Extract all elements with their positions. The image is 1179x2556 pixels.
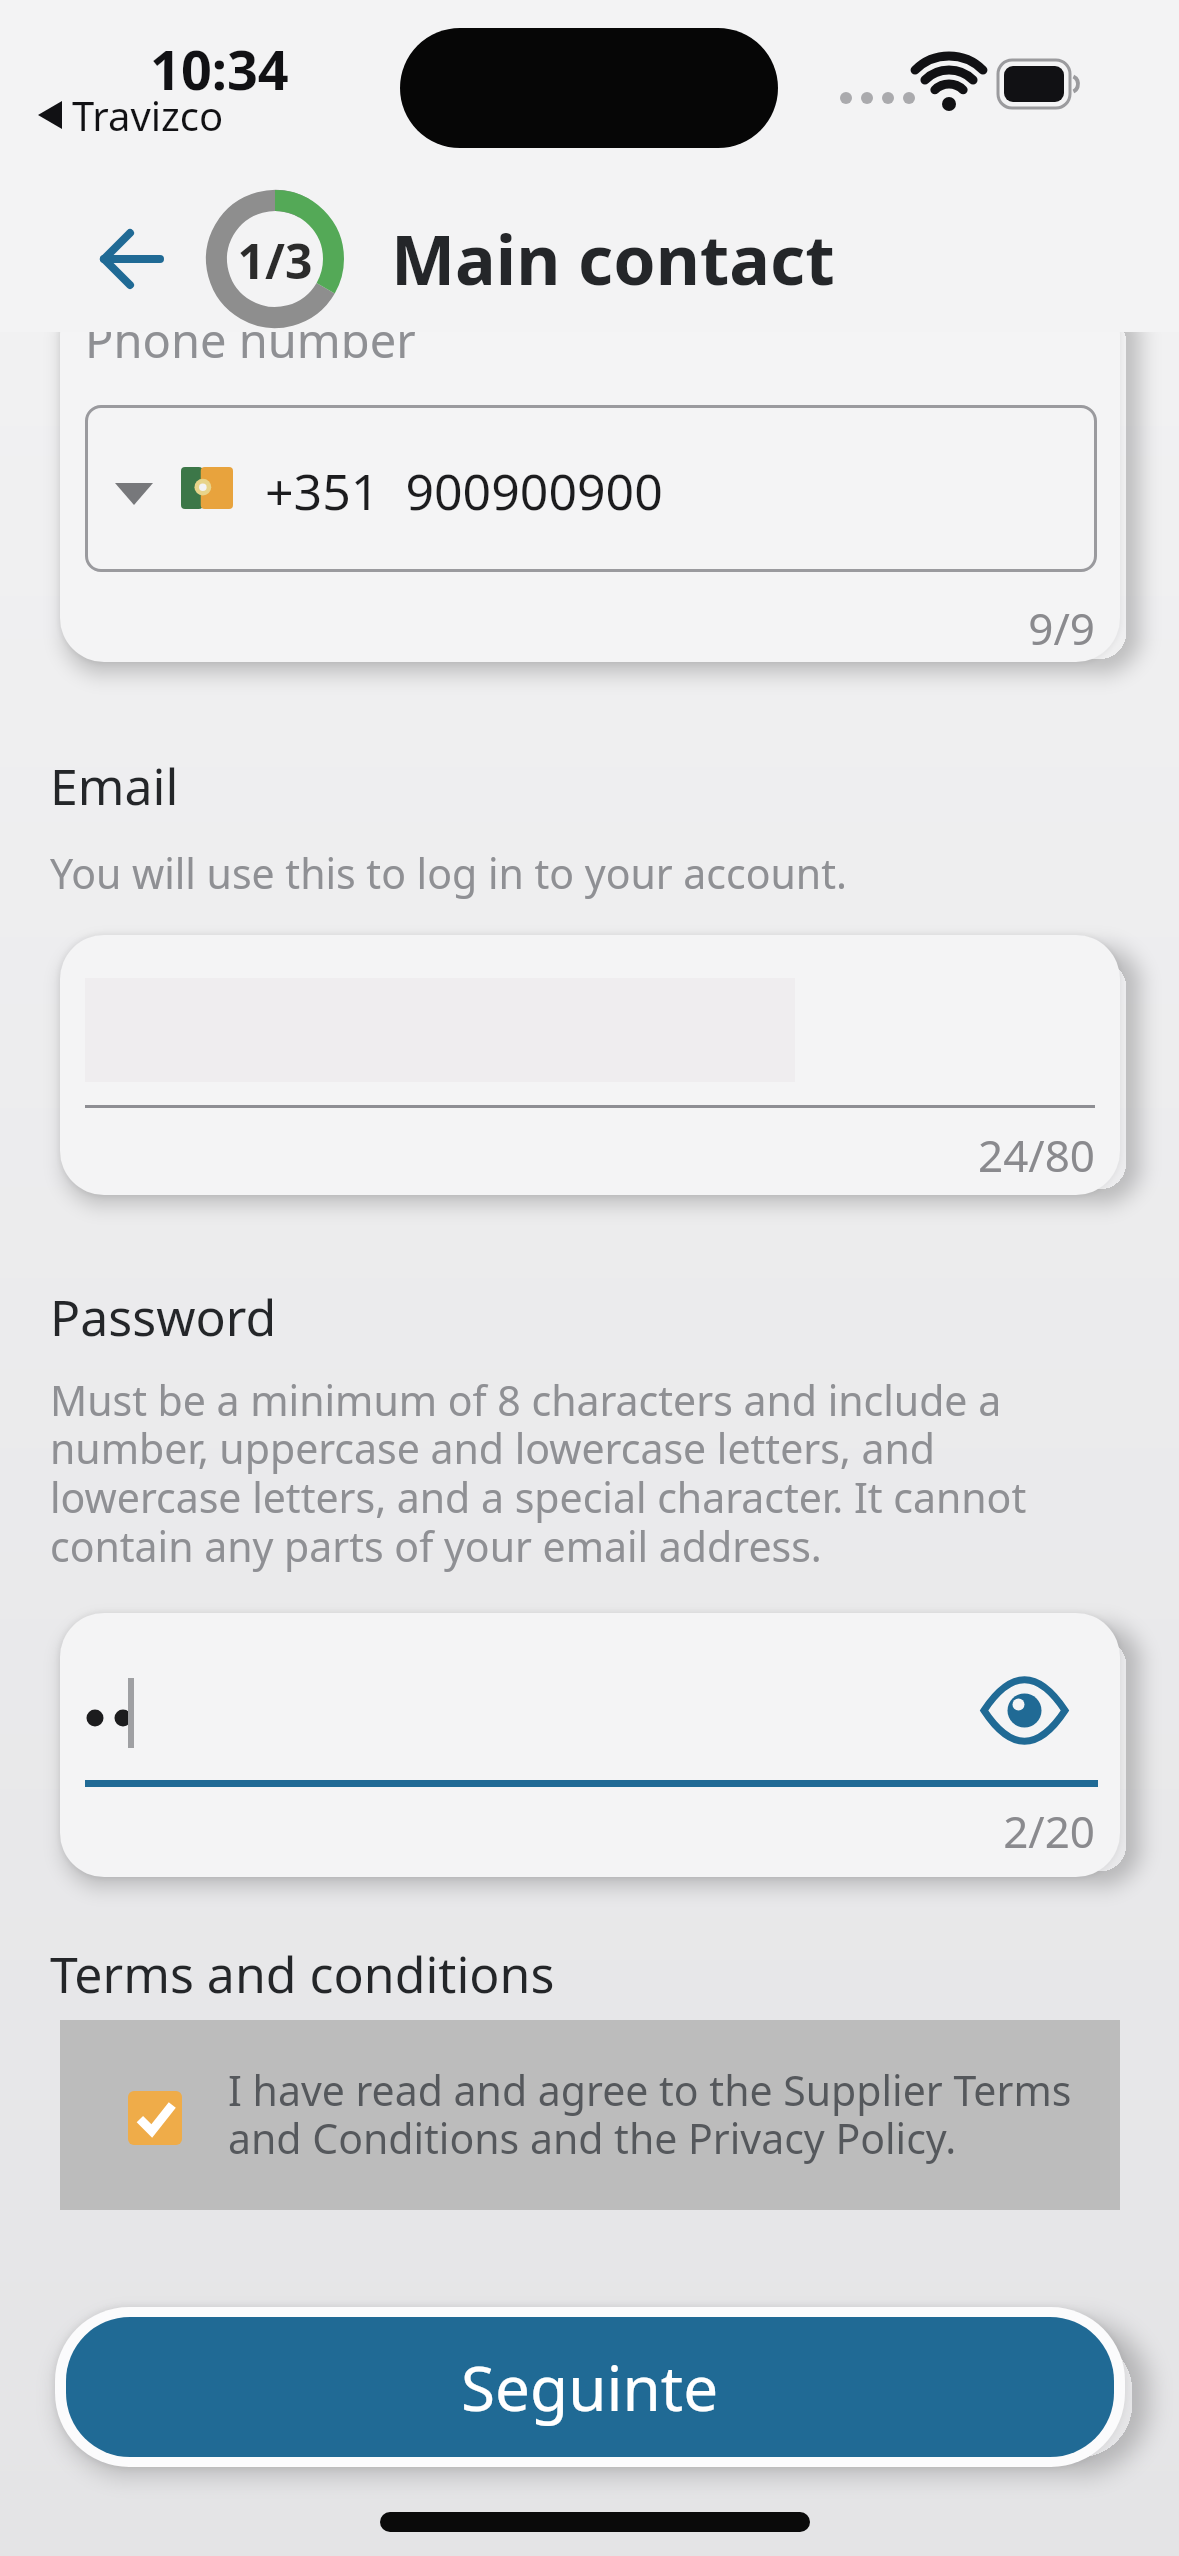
- staticText: Main contact: [391, 212, 835, 305]
- staticText: 1/3: [206, 228, 344, 293]
- staticText: Must be a minimum of 8 characters and in…: [50, 1372, 1027, 1574]
- staticText: Phone number: [85, 308, 416, 372]
- button[interactable]: I have read and agree to the Supplier Te…: [60, 2020, 1120, 2210]
- staticText: Email: [50, 752, 179, 820]
- staticText: You will use this to log in to your acco…: [50, 845, 847, 901]
- staticText: 24/80: [60, 1125, 1095, 1185]
- staticText: +351 900900900: [265, 457, 663, 525]
- button[interactable]: Seguinte: [66, 2317, 1114, 2457]
- staticText: I have read and agree to the Supplier Te…: [228, 2062, 1072, 2166]
- button[interactable]: 2/20: [60, 1613, 1120, 1877]
- staticText: Travizco: [72, 88, 224, 142]
- staticText: Terms and conditions: [50, 1940, 555, 2008]
- staticText: 9/9: [0, 598, 1095, 658]
- button[interactable]: [100, 228, 162, 290]
- staticText: 2/20: [60, 1801, 1095, 1861]
- staticText: 10:34: [150, 32, 289, 106]
- staticText: Seguinte: [461, 2345, 719, 2429]
- button[interactable]: 24/80: [60, 935, 1120, 1195]
- button[interactable]: +351 900900900: [85, 405, 1097, 572]
- staticText: Password: [50, 1283, 277, 1351]
